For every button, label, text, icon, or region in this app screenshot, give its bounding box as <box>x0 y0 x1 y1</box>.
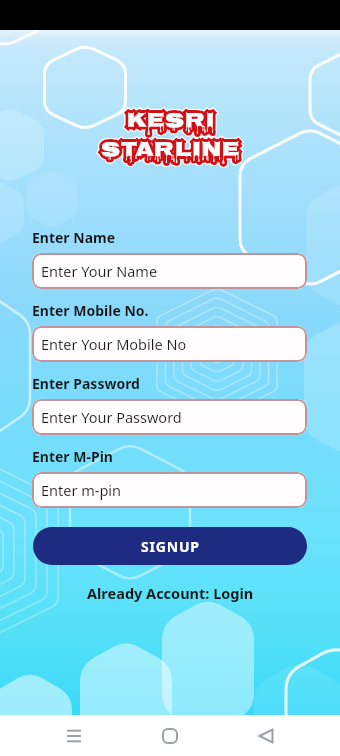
staticText: Enter m-pin <box>41 480 122 500</box>
button[interactable]: Enter Your Password <box>32 399 307 435</box>
button[interactable]: Already Account: Login <box>87 583 254 603</box>
staticText: SIGNUP <box>141 537 200 556</box>
button[interactable]: Enter Your Name <box>32 253 307 289</box>
button[interactable]: Home <box>148 715 192 756</box>
button[interactable]: Recent apps <box>52 715 96 756</box>
staticText: Enter Your Password <box>41 407 182 427</box>
staticText: Enter M-Pin <box>32 447 113 466</box>
staticText: KESRi STARLINE <box>101 104 240 170</box>
button[interactable]: SIGNUP <box>33 527 307 565</box>
staticText: KESRi STARLINE <box>101 104 240 170</box>
staticText: Enter Mobile No. <box>32 301 149 320</box>
staticText: Enter Password <box>32 374 140 393</box>
button[interactable]: Back <box>244 715 288 756</box>
staticText: Enter Your Mobile No <box>41 334 187 354</box>
staticText: Enter Your Name <box>41 261 158 281</box>
button[interactable]: Enter Your Mobile No <box>32 326 307 362</box>
button[interactable]: Enter m-pin <box>32 472 307 508</box>
staticText: KESRi STARLINE <box>101 104 240 170</box>
staticText: Enter Name <box>32 228 116 247</box>
